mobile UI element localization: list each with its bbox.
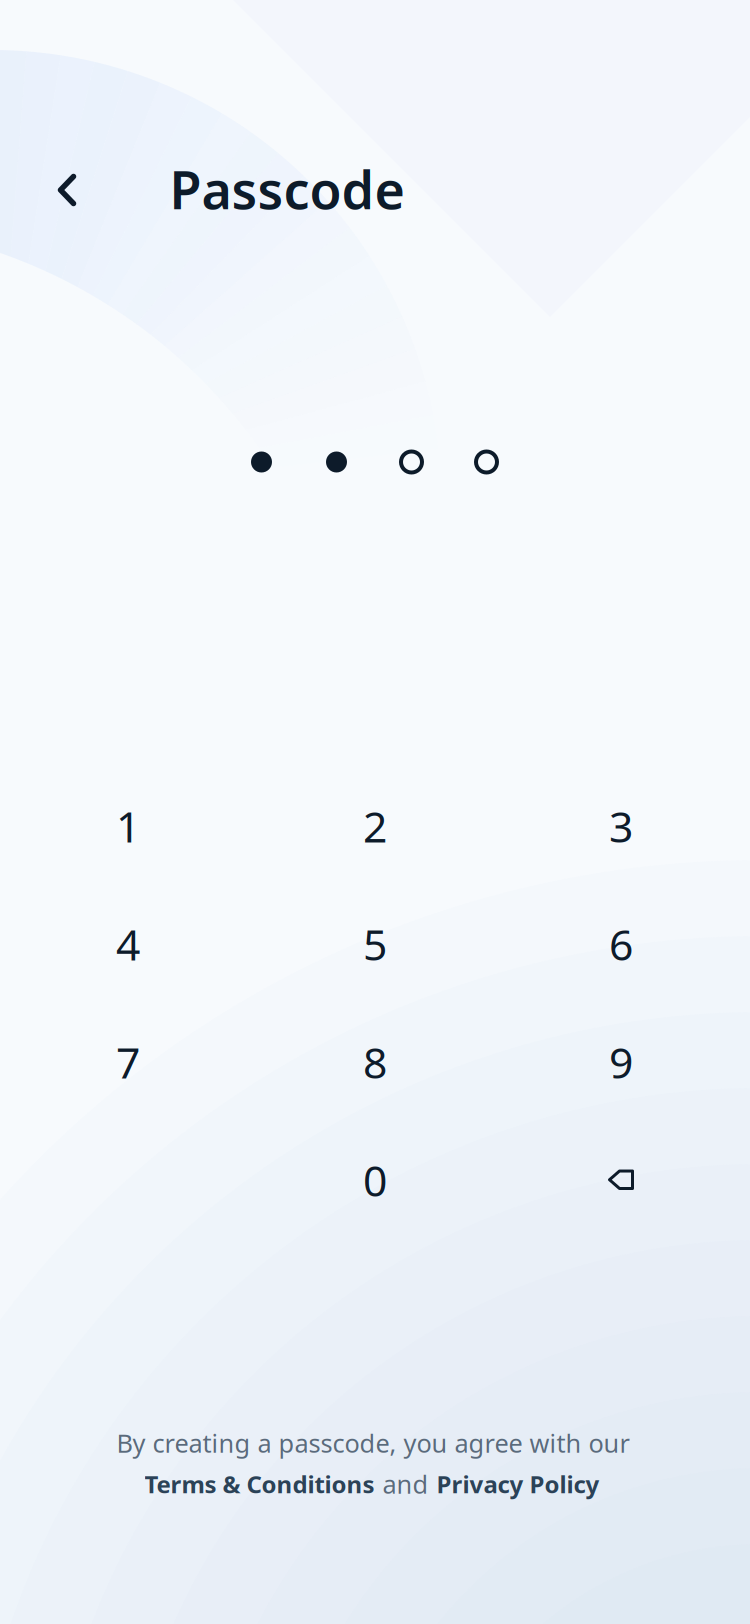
staticText: 6: [609, 916, 633, 972]
button[interactable]: 2: [260, 767, 490, 885]
staticText: 9: [609, 1034, 633, 1090]
staticText: 1: [116, 798, 140, 854]
button[interactable]: 9: [506, 1003, 736, 1121]
staticText: Terms & Conditions: [144, 1468, 374, 1500]
staticText: Privacy Policy: [436, 1468, 599, 1500]
staticText: 8: [363, 1034, 387, 1090]
button[interactable]: 3: [506, 767, 736, 885]
button[interactable]: 1: [13, 767, 243, 885]
button[interactable]: 6: [506, 885, 736, 1003]
button[interactable]: 4: [13, 885, 243, 1003]
staticText: and: [382, 1467, 428, 1501]
staticText: 5: [363, 916, 387, 972]
staticText: 2: [363, 798, 387, 854]
button[interactable]: Privacy Policy: [436, 1468, 599, 1500]
button[interactable]: 7: [13, 1003, 243, 1121]
staticText: 7: [116, 1034, 140, 1090]
staticText: 4: [116, 916, 140, 972]
staticText: 0: [363, 1152, 387, 1208]
staticText: 3: [609, 798, 633, 854]
button[interactable]: Terms & Conditions: [144, 1468, 374, 1500]
staticText: Passcode: [169, 154, 404, 224]
staticText: By creating a passcode, you agree with o…: [116, 1426, 629, 1460]
button[interactable]: 8: [260, 1003, 490, 1121]
button[interactable]: 5: [260, 885, 490, 1003]
button[interactable]: Delete: [506, 1121, 736, 1239]
button[interactable]: 0: [260, 1121, 490, 1239]
button[interactable]: Back: [35, 158, 99, 222]
